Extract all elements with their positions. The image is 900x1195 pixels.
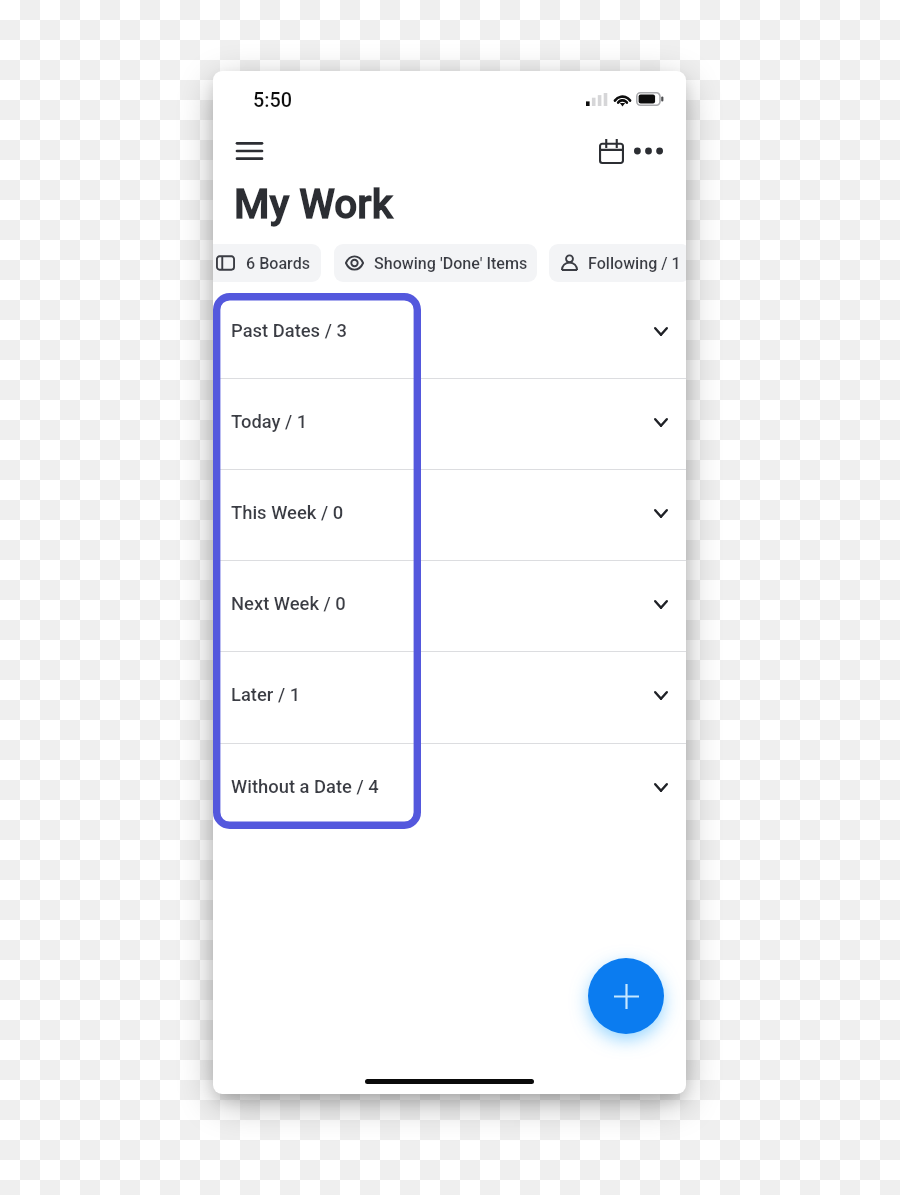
staticText: 6 Boards — [246, 254, 311, 273]
staticText: My Work — [234, 180, 393, 227]
button[interactable]: This Week / 0 — [213, 469, 686, 560]
button[interactable]: Add — [588, 958, 664, 1034]
staticText: Without a Date / 4 — [231, 776, 379, 798]
button[interactable]: Later / 1 — [213, 651, 686, 742]
staticText: Later / 1 — [231, 684, 301, 706]
button[interactable]: Calendar — [590, 130, 633, 172]
staticText: Past Dates / 3 — [231, 320, 347, 342]
staticText: Today / 1 — [231, 411, 308, 433]
button[interactable]: Open navigation menu — [227, 132, 272, 170]
button[interactable]: Past Dates / 3 — [213, 287, 686, 378]
button[interactable]: 6 Boards — [213, 244, 321, 282]
staticText: 5:50 — [253, 89, 292, 112]
button[interactable]: Showing 'Done' Items — [334, 244, 537, 282]
staticText: Next Week / 0 — [231, 593, 346, 615]
staticText: Showing 'Done' Items — [374, 254, 528, 273]
staticText: This Week / 0 — [231, 502, 344, 524]
staticText: Following / 1 — [588, 254, 681, 273]
button[interactable]: Today / 1 — [213, 378, 686, 469]
button[interactable]: Following / 1 — [549, 244, 686, 282]
button[interactable]: Next Week / 0 — [213, 560, 686, 651]
button[interactable]: More options — [631, 131, 666, 171]
button[interactable]: Without a Date / 4 — [213, 743, 686, 834]
